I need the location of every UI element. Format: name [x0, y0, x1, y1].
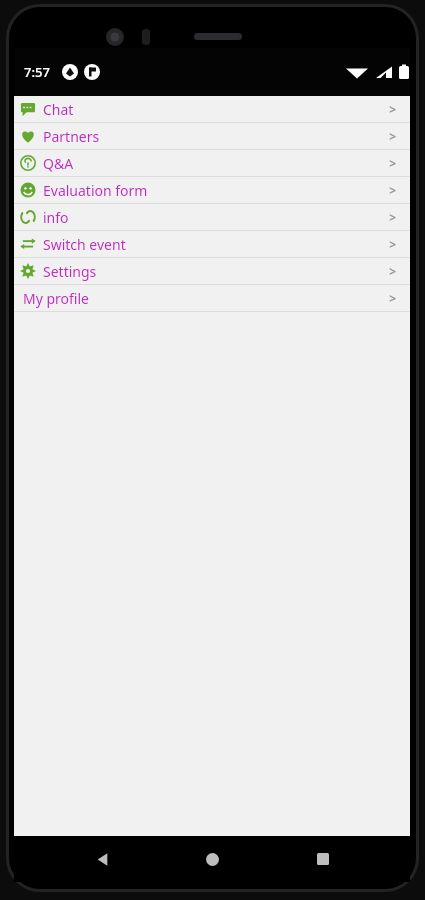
staticText: >: [389, 209, 396, 225]
staticText: >: [389, 128, 396, 144]
staticText: Evaluation form: [43, 181, 389, 200]
button[interactable]: Recent apps: [300, 836, 346, 882]
staticText: >: [389, 236, 396, 252]
button[interactable]: Evaluation form: [14, 177, 410, 203]
staticText: >: [389, 155, 396, 171]
button[interactable]: Settings: [14, 258, 410, 284]
button[interactable]: Home: [189, 836, 235, 882]
staticText: Q&A: [43, 154, 389, 173]
button[interactable]: My profile: [14, 285, 410, 311]
staticText: Partners: [43, 127, 389, 146]
staticText: Settings: [43, 262, 389, 281]
button[interactable]: Q&A: [14, 150, 410, 176]
staticText: My profile: [23, 289, 389, 308]
staticText: Switch event: [43, 235, 389, 254]
staticText: 7:57: [24, 63, 50, 81]
button[interactable]: Partners: [14, 123, 410, 149]
staticText: >: [389, 263, 396, 279]
staticText: info: [43, 208, 389, 227]
button[interactable]: info: [14, 204, 410, 230]
staticText: >: [389, 101, 396, 117]
button[interactable]: Chat: [14, 96, 410, 122]
staticText: >: [389, 290, 396, 306]
staticText: >: [389, 182, 396, 198]
staticText: Chat: [43, 100, 389, 119]
button[interactable]: Switch event: [14, 231, 410, 257]
button[interactable]: Back: [79, 836, 125, 882]
